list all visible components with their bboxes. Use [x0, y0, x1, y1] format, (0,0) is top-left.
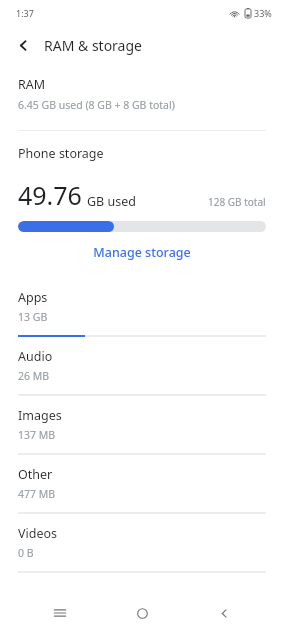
button[interactable]: Recent apps	[38, 596, 82, 630]
staticText: Phone storage	[18, 145, 104, 162]
staticText: 0 B	[18, 546, 34, 560]
button[interactable]: Images	[0, 396, 284, 455]
staticText: 6.45 GB used (8 GB + 8 GB total)	[18, 98, 175, 112]
staticText: 13 GB	[18, 310, 48, 324]
staticText: Apps	[18, 289, 48, 306]
button[interactable]: Back	[202, 596, 246, 630]
button[interactable]: Back	[6, 28, 40, 62]
button[interactable]: Other	[0, 455, 284, 514]
staticText: 49.76	[18, 178, 82, 212]
staticText: RAM	[18, 76, 46, 93]
staticText: 477 MB	[18, 487, 56, 501]
staticText: 128 GB total	[208, 195, 266, 209]
staticText: Videos	[18, 525, 58, 542]
staticText: RAM & storage	[44, 36, 142, 55]
button[interactable]: Apps	[0, 278, 284, 337]
staticText: Manage storage	[93, 244, 191, 261]
staticText: 26 MB	[18, 369, 50, 383]
button[interactable]: Manage storage	[0, 232, 284, 272]
staticText: Images	[18, 407, 62, 424]
staticText: 33%	[254, 7, 272, 19]
button[interactable]: Audio	[0, 337, 284, 396]
staticText: 1:37	[16, 7, 34, 19]
staticText: Other	[18, 466, 53, 483]
button[interactable]: Home	[120, 596, 164, 630]
button[interactable]: Videos	[0, 514, 284, 573]
staticText: Audio	[18, 348, 53, 365]
staticText: 137 MB	[18, 428, 56, 442]
staticText: GB used	[87, 193, 136, 210]
